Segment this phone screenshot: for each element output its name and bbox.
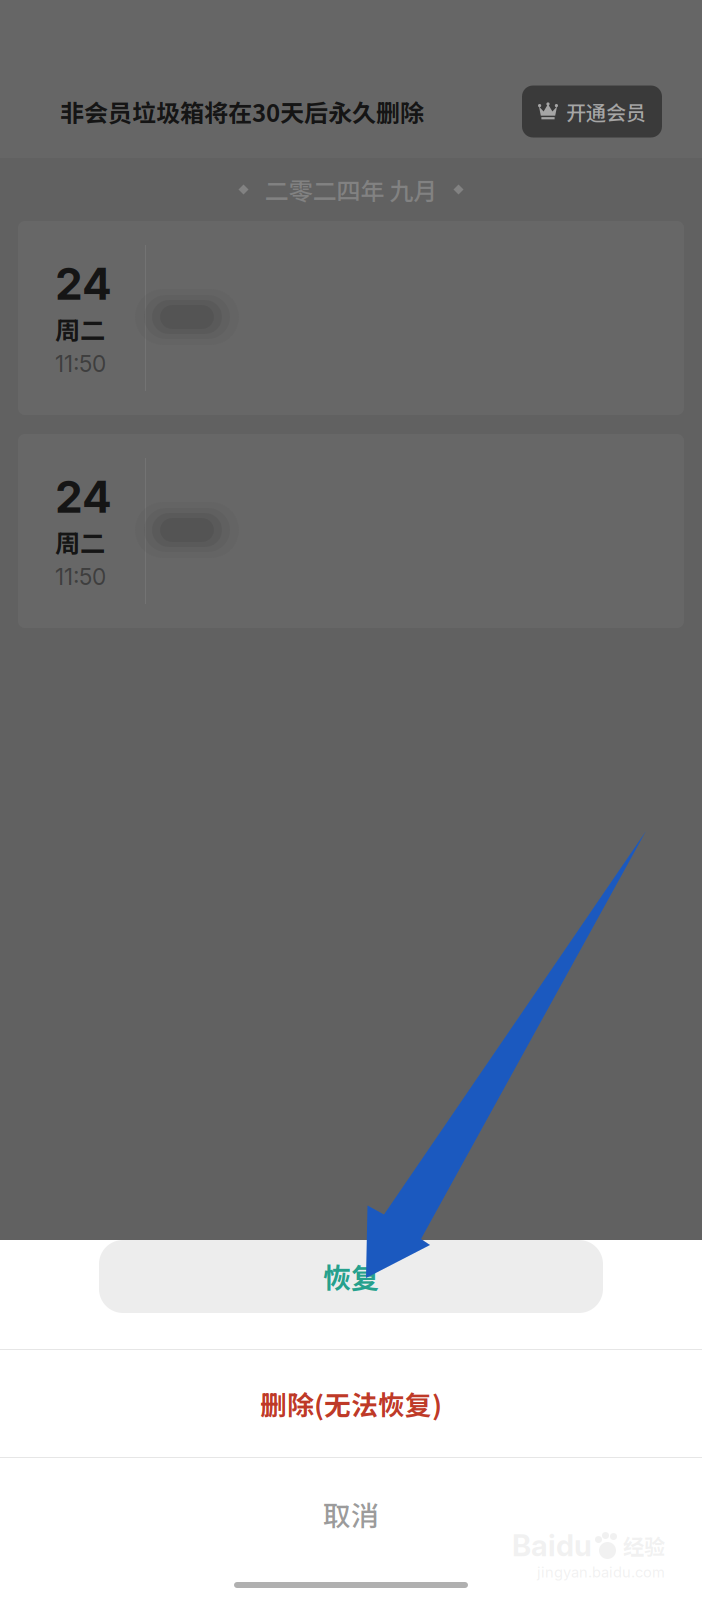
staticText: 非会员垃圾箱将在30天后永久删除 bbox=[60, 94, 424, 129]
staticText: 开通会员 bbox=[566, 97, 646, 126]
staticText: 11:50 bbox=[55, 350, 106, 377]
staticText: 恢复 bbox=[323, 1256, 379, 1297]
staticText: Baidu bbox=[512, 1528, 592, 1563]
staticText: 24 bbox=[55, 470, 112, 523]
staticText: 11:50 bbox=[55, 563, 106, 590]
staticText: 二零二四年 九月 bbox=[264, 172, 437, 207]
button[interactable]: 恢复 bbox=[0, 1240, 702, 1349]
button[interactable]: 删除(无法恢复) bbox=[0, 1350, 702, 1457]
staticText: 删除(无法恢复) bbox=[260, 1384, 442, 1423]
staticText: 取消 bbox=[323, 1494, 379, 1534]
staticText: 周二 bbox=[55, 310, 105, 347]
button[interactable]: 24 bbox=[18, 434, 684, 628]
button[interactable]: 开通会员 bbox=[522, 85, 662, 137]
staticText: 24 bbox=[55, 257, 112, 310]
button[interactable]: 24 bbox=[18, 221, 684, 415]
staticText: jingyan.baidu.com bbox=[537, 1563, 665, 1581]
staticText: 周二 bbox=[55, 523, 105, 560]
button[interactable]: 取消 bbox=[0, 1458, 702, 1570]
staticText: 经验 bbox=[623, 1530, 665, 1561]
